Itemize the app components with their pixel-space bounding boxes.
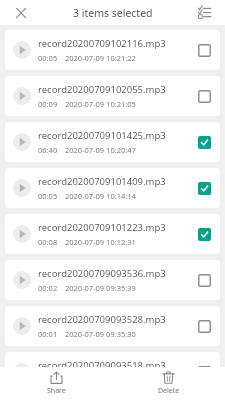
button[interactable]: Share <box>0 368 112 399</box>
staticText: record20200709102055.mp3 <box>38 83 166 96</box>
button[interactable]: Not selected <box>188 306 220 346</box>
staticText: 3 items selected <box>73 6 153 20</box>
staticText: 2020-07-09 10:21:05 <box>65 99 136 109</box>
button[interactable]: Select all <box>189 0 219 25</box>
staticText: record20200709093528.mp3 <box>38 313 166 326</box>
staticText: Delete <box>158 386 180 396</box>
button[interactable]: Selected <box>188 168 220 208</box>
button[interactable]: record20200709102055.mp3 <box>5 76 220 116</box>
staticText: 00:08 <box>38 237 58 247</box>
staticText: 00:05 <box>38 191 58 201</box>
button[interactable]: Not selected <box>188 352 220 392</box>
button[interactable]: record20200709102116.mp3 <box>5 30 220 70</box>
staticText: record20200709101223.mp3 <box>38 221 166 234</box>
staticText: 2020-07-09 10:20:47 <box>65 145 136 155</box>
staticText: 2020-07-09 09:35:39 <box>65 283 136 293</box>
button[interactable]: record20200709093536.mp3 <box>5 260 220 300</box>
button[interactable]: Not selected <box>188 76 220 116</box>
staticText: 00:05 <box>38 53 58 63</box>
staticText: 2020-07-09 10:14:14 <box>65 191 136 201</box>
button[interactable]: record20200709101425.mp3 <box>5 122 220 162</box>
staticText: 06:40 <box>38 145 58 155</box>
staticText: 00:09 <box>38 99 58 109</box>
button[interactable]: Close <box>6 0 36 25</box>
button[interactable]: Selected <box>188 214 220 254</box>
staticText: 2020-07-09 09:35:30 <box>65 329 136 339</box>
staticText: 2020-07-09 10:12:31 <box>65 237 136 247</box>
other: Share <box>50 371 63 384</box>
staticText: 00:03 <box>38 375 58 385</box>
button[interactable]: record20200709101223.mp3 <box>5 214 220 254</box>
button[interactable]: Delete <box>112 368 225 399</box>
button[interactable]: record20200709101409.mp3 <box>5 168 220 208</box>
button[interactable]: Not selected <box>188 30 220 70</box>
staticText: 00:01 <box>38 329 58 339</box>
staticText: Share <box>47 386 66 396</box>
staticText: record20200709093536.mp3 <box>38 267 166 280</box>
staticText: record20200709101425.mp3 <box>38 129 166 142</box>
button[interactable]: record20200709093528.mp3 <box>5 306 220 346</box>
staticText: record20200709101409.mp3 <box>38 175 166 188</box>
other: Delete <box>162 371 175 384</box>
button[interactable]: record20200709093518.mp3 <box>5 352 220 392</box>
staticText: record20200709093518.mp3 <box>38 359 166 372</box>
button[interactable]: Selected <box>188 122 220 162</box>
button[interactable]: Not selected <box>188 260 220 300</box>
staticText: 00:02 <box>38 283 58 293</box>
staticText: 2020-07-09 10:21:22 <box>65 53 136 63</box>
staticText: record20200709102116.mp3 <box>38 37 166 50</box>
